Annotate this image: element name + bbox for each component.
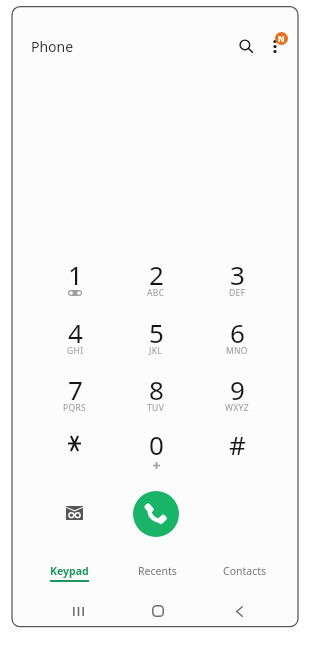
button[interactable]: Call	[133, 491, 179, 537]
button[interactable]: 4	[36, 312, 114, 364]
staticText: WXYZ	[225, 402, 249, 414]
staticText: 5	[149, 315, 164, 347]
staticText: 7	[68, 372, 83, 404]
staticText: Phone	[31, 37, 74, 56]
button[interactable]: #	[198, 423, 276, 475]
button[interactable]: 5	[117, 312, 195, 364]
button[interactable]: Home	[136, 597, 180, 625]
button[interactable]: Phone	[31, 37, 91, 59]
button[interactable]: 2	[117, 254, 195, 306]
staticText: 8	[149, 372, 164, 404]
staticText: 9	[230, 372, 245, 404]
staticText: Contacts	[223, 564, 267, 578]
button[interactable]: Contacts	[201, 560, 289, 586]
button[interactable]: 7	[36, 369, 114, 421]
button[interactable]: 6	[198, 312, 276, 364]
staticText: 4	[68, 315, 83, 347]
button[interactable]: 1	[36, 254, 114, 306]
staticText: 6	[230, 315, 245, 347]
button[interactable]: 3	[198, 254, 276, 306]
staticText: 0	[149, 427, 164, 459]
button[interactable]: Search	[230, 29, 262, 61]
staticText: 1	[68, 257, 83, 289]
button[interactable]: 0	[117, 423, 195, 475]
staticText: JKL	[149, 345, 163, 357]
staticText: 2	[149, 257, 164, 289]
staticText: MNO	[226, 345, 248, 357]
staticText: PQRS	[63, 402, 87, 414]
button[interactable]: 9	[198, 369, 276, 421]
button[interactable]: Keypad	[25, 560, 113, 586]
staticText: GHI	[67, 345, 84, 357]
staticText: Recents	[138, 564, 177, 578]
button[interactable]: Voicemail	[56, 495, 92, 531]
staticText: ABC	[147, 287, 165, 299]
button[interactable]: Back	[217, 597, 261, 625]
button[interactable]: More options	[261, 32, 289, 60]
button[interactable]: Recent apps	[56, 597, 100, 625]
button[interactable]: 8	[117, 369, 195, 421]
staticText: #	[229, 427, 246, 459]
staticText: N	[278, 33, 285, 44]
staticText: 3	[230, 257, 245, 289]
staticText: DEF	[229, 287, 246, 299]
staticText: Keypad	[50, 564, 89, 578]
button[interactable]: Recents	[113, 560, 201, 586]
staticText: TUV	[147, 402, 165, 414]
button[interactable]: *	[36, 423, 114, 475]
